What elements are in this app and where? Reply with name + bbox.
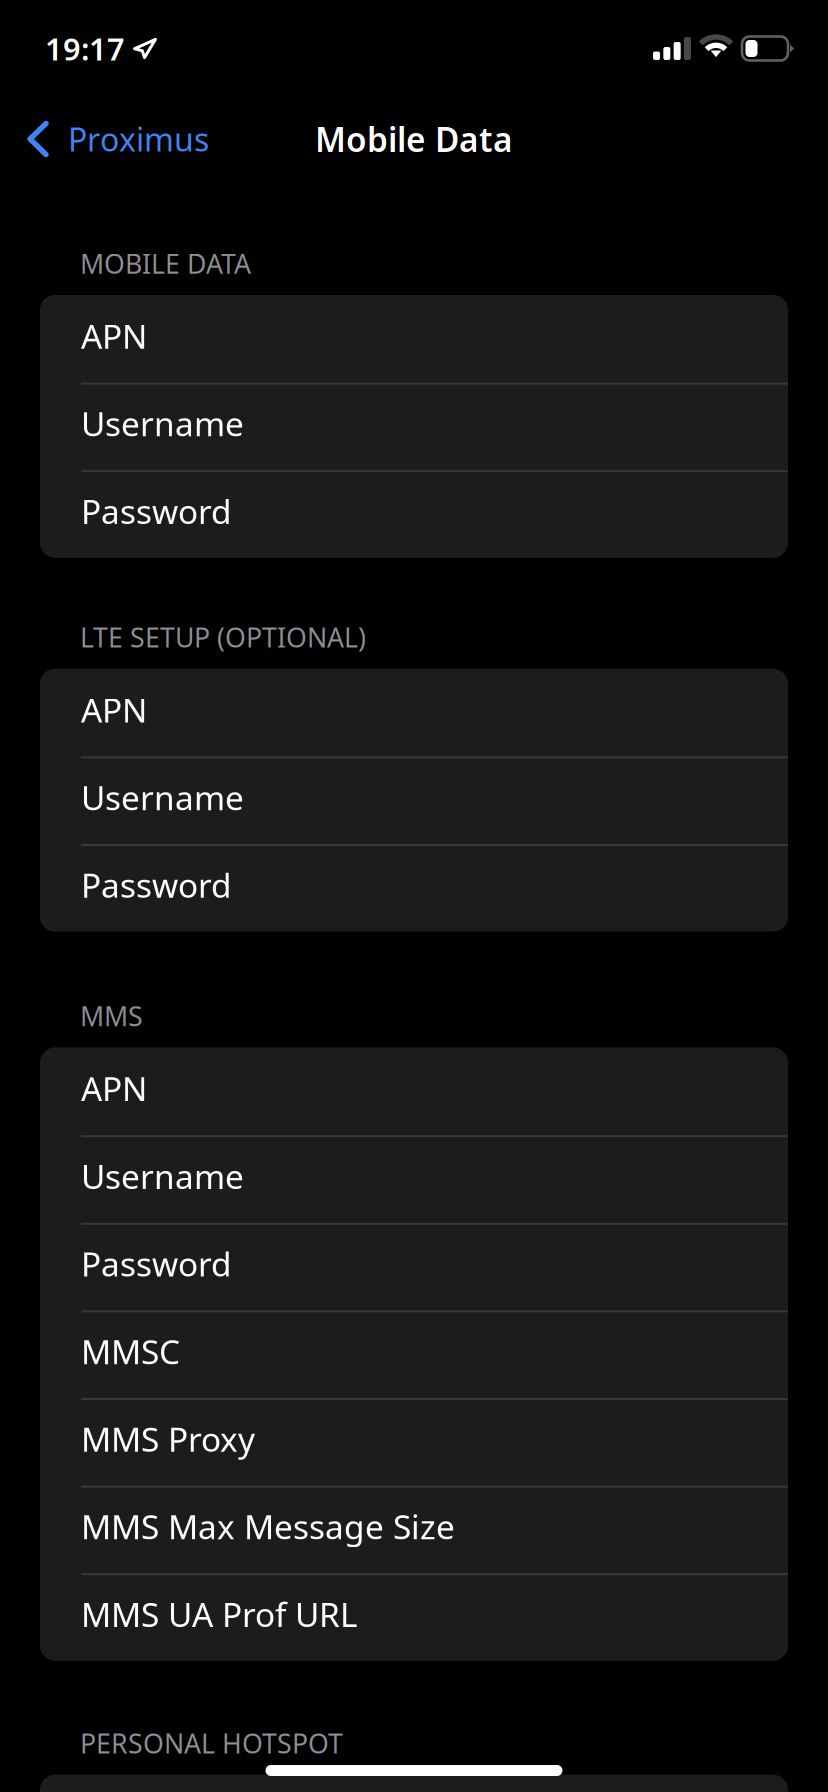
button[interactable]: Username — [40, 383, 788, 470]
button[interactable]: Back to Proximus — [0, 97, 300, 181]
staticText: MMS Max Message Size — [81, 1504, 455, 1549]
staticText: Proximus — [68, 118, 209, 160]
button[interactable]: Wi-Fi Password — [40, 1775, 788, 1792]
staticText: APN — [81, 1066, 147, 1111]
staticText: MMSC — [81, 1329, 180, 1373]
button[interactable]: MMS Proxy — [40, 1398, 788, 1486]
staticText: Username — [81, 775, 244, 819]
staticText: PERSONAL HOTSPOT — [80, 1725, 343, 1761]
button[interactable]: MMSC — [40, 1310, 788, 1398]
staticText: Password — [81, 489, 232, 533]
staticText: APN — [81, 314, 147, 358]
button[interactable]: Password — [40, 470, 788, 558]
button[interactable]: Username — [40, 1135, 788, 1223]
button[interactable]: APN — [40, 1048, 788, 1135]
button[interactable]: MMS UA Prof URL — [40, 1573, 788, 1661]
staticText: MMS — [80, 998, 143, 1034]
staticText: APN — [81, 687, 147, 732]
button[interactable]: Password — [40, 844, 788, 932]
staticText: MMS UA Prof URL — [81, 1592, 357, 1636]
staticText: LTE SETUP (OPTIONAL) — [80, 619, 366, 655]
staticText: 19:17 — [45, 28, 125, 69]
staticText: Mobile Data — [315, 117, 513, 161]
button[interactable]: MMS Max Message Size — [40, 1486, 788, 1573]
staticText: Password — [81, 863, 232, 907]
staticText: Username — [81, 1154, 244, 1198]
button[interactable]: Username — [40, 756, 788, 844]
staticText: Username — [81, 401, 244, 446]
button[interactable]: APN — [40, 669, 788, 756]
button[interactable]: APN — [40, 295, 788, 383]
staticText: Password — [81, 1241, 232, 1286]
button[interactable]: Password — [40, 1223, 788, 1310]
staticText: MOBILE DATA — [80, 246, 251, 281]
staticText: MMS Proxy — [81, 1417, 255, 1461]
